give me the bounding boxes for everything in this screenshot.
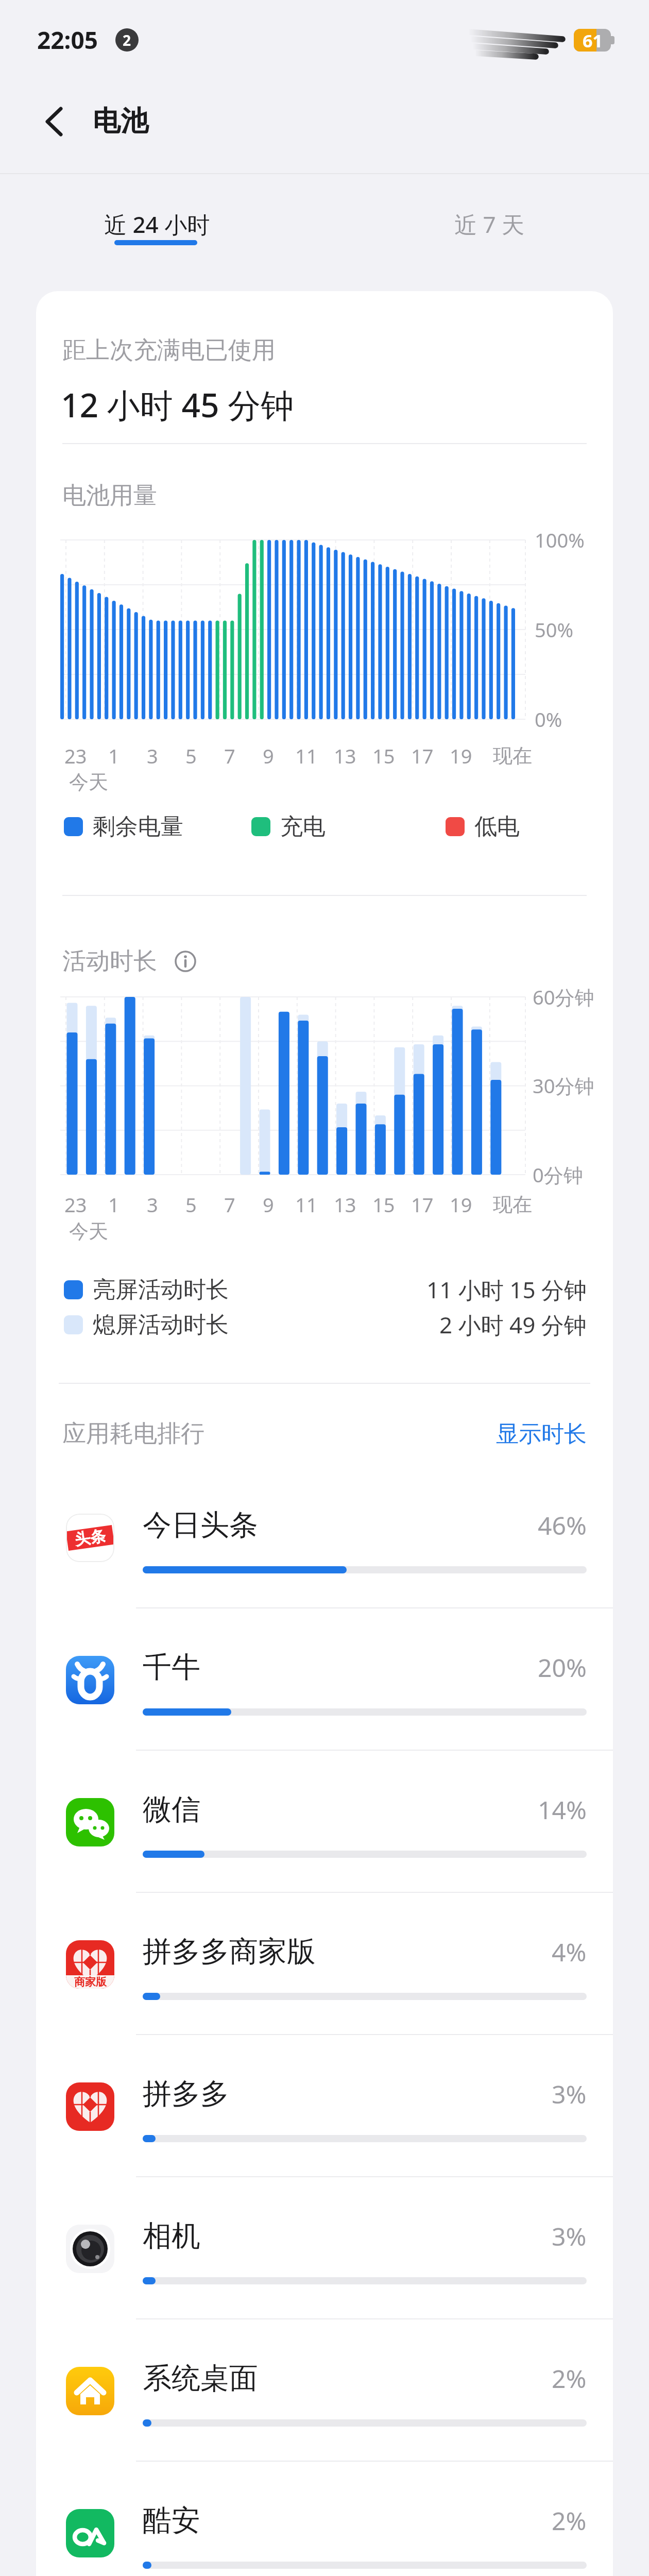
staticText: 电池 <box>93 104 148 139</box>
staticText: 系统桌面 <box>143 2360 258 2397</box>
staticText: 17 <box>411 1191 434 1218</box>
staticText: 2 小时 49 分钟 <box>439 1309 587 1340</box>
staticText: 3% <box>552 2219 587 2253</box>
button[interactable] <box>36 1467 613 1609</box>
staticText: 熄屏活动时长 <box>93 1311 229 1339</box>
staticText: 19 <box>450 1191 472 1218</box>
staticText: 电池用量 <box>62 481 157 511</box>
staticText: 15 <box>372 1191 395 1218</box>
button[interactable]: 显示时长 <box>0 0 391 45</box>
button[interactable]: 近 7 天 <box>412 196 567 252</box>
staticText: 头条 <box>73 1526 107 1550</box>
button[interactable] <box>170 946 201 977</box>
button[interactable] <box>36 2036 613 2178</box>
staticText: 千牛 <box>143 1649 200 1686</box>
staticText: 3% <box>552 2077 587 2111</box>
staticText: 7 <box>224 1191 235 1218</box>
staticText: 剩余电量 <box>93 812 183 841</box>
staticText: 商家版 <box>74 1975 107 1989</box>
staticText: 11 <box>295 742 318 769</box>
staticText: 活动时长 <box>62 946 157 976</box>
staticText: 5 <box>185 1191 197 1218</box>
staticText: 近 24 小时 <box>104 209 210 240</box>
staticText: 拼多多 <box>143 2076 229 2112</box>
staticText: 22:05 <box>37 24 98 56</box>
staticText: 拼多多商家版 <box>143 1934 316 1970</box>
staticText: 61 <box>583 29 603 52</box>
staticText: 今天 <box>69 770 108 794</box>
staticText: 现在 <box>493 743 532 768</box>
staticText: 13 <box>334 1191 356 1218</box>
staticText: 低电 <box>474 812 520 841</box>
staticText: 充电 <box>280 812 326 841</box>
staticText: 酷安 <box>143 2502 200 2539</box>
staticText: 11 小时 15 分钟 <box>426 1274 587 1305</box>
button[interactable]: 近 24 小时 <box>77 196 237 252</box>
staticText: 19 <box>450 742 472 769</box>
staticText: 23 <box>64 1191 87 1218</box>
staticText: 17 <box>411 742 434 769</box>
button[interactable] <box>35 102 74 141</box>
staticText: 14% <box>538 1793 587 1826</box>
staticText: 2 <box>123 30 131 50</box>
staticText: 0分钟 <box>533 1161 583 1188</box>
staticText: 亮屏活动时长 <box>93 1276 229 1304</box>
staticText: 今日头条 <box>143 1507 258 1544</box>
staticText: 30分钟 <box>533 1072 594 1099</box>
staticText: 3 <box>147 742 158 769</box>
button[interactable] <box>36 1893 613 2036</box>
staticText: 9 <box>263 742 274 769</box>
staticText: 近 7 天 <box>454 209 525 240</box>
staticText: 应用耗电排行 <box>62 1419 204 1449</box>
button[interactable] <box>36 2462 613 2576</box>
staticText: 9 <box>263 1191 274 1218</box>
staticText: 现在 <box>493 1192 532 1217</box>
staticText: 46% <box>538 1509 587 1542</box>
staticText: 5 <box>185 742 197 769</box>
staticText: 20% <box>538 1651 587 1684</box>
button[interactable] <box>36 2178 613 2320</box>
staticText: 微信 <box>143 1791 200 1828</box>
button[interactable] <box>36 1609 613 1751</box>
staticText: 3 <box>147 1191 158 1218</box>
staticText: 距上次充满电已使用 <box>62 335 276 365</box>
staticText: 11 <box>295 1191 318 1218</box>
staticText: 相机 <box>143 2218 200 2255</box>
staticText: 2% <box>552 2362 587 2395</box>
staticText: 今天 <box>69 1219 108 1244</box>
staticText: 15 <box>372 742 395 769</box>
staticText: 显示时长 <box>496 1420 587 1448</box>
staticText: 23 <box>64 742 87 769</box>
button[interactable] <box>36 2320 613 2462</box>
staticText: 50% <box>535 616 574 643</box>
staticText: 60分钟 <box>533 984 594 1010</box>
staticText: 12 小时 45 分钟 <box>61 382 294 427</box>
staticText: 7 <box>224 742 235 769</box>
button[interactable] <box>36 1751 613 1893</box>
staticText: 2% <box>552 2504 587 2537</box>
staticText: 4% <box>552 1935 587 1969</box>
staticText: 1 <box>108 1191 119 1218</box>
staticText: 13 <box>334 742 356 769</box>
staticText: 0% <box>535 706 562 733</box>
staticText: 1 <box>108 742 119 769</box>
staticText: 100% <box>535 527 585 553</box>
